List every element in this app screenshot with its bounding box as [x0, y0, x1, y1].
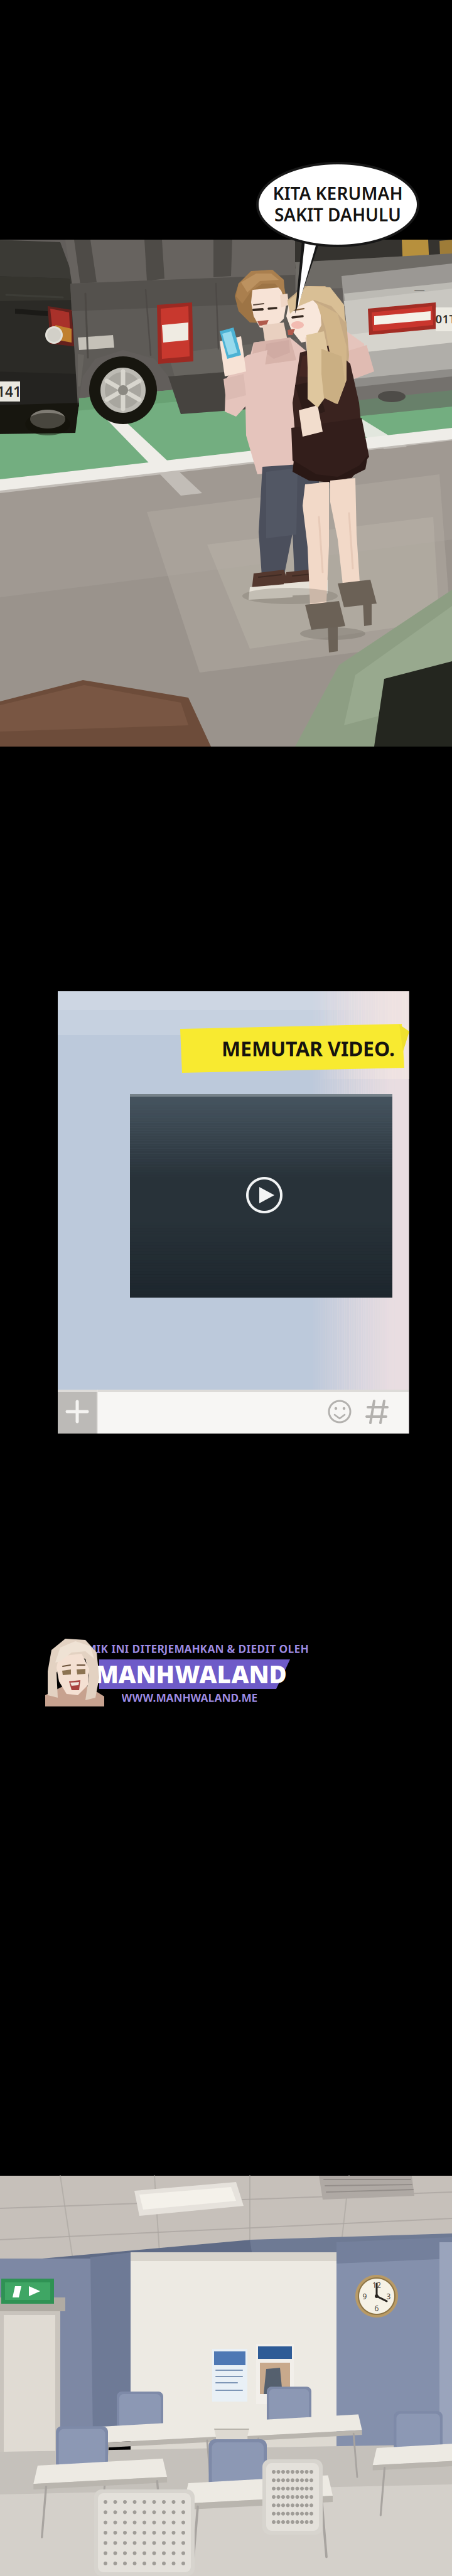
staticText: 6 [374, 2303, 379, 2313]
staticText: 4141 [0, 382, 21, 401]
staticText: 9 [363, 2291, 367, 2301]
staticText: WWW.MANHWALAND.ME [121, 1690, 258, 1705]
staticText: KITA KERUMAH [273, 182, 403, 205]
staticText: SAKIT DAHULU [274, 203, 401, 226]
staticText: 12 [372, 2280, 381, 2290]
staticText: MEMUTAR VIDEO. [222, 1035, 395, 1062]
staticText: KOMIK INI DITERJEMAHKAN & DIEDIT OLEH [71, 1642, 309, 1656]
staticText: — [414, 283, 425, 297]
staticText: ~ ~~ [239, 350, 261, 365]
staticText: 3 [386, 2291, 391, 2301]
staticText: MANHWALAND [95, 1658, 287, 1690]
staticText: 01T [435, 311, 452, 326]
